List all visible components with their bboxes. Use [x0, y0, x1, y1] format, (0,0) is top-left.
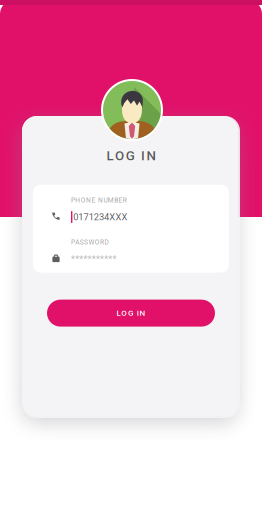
staticText: LOG IN: [116, 308, 145, 318]
staticText: PASSWORD: [71, 238, 108, 246]
staticText: LOG IN: [106, 148, 155, 164]
staticText: ***********: [71, 254, 116, 264]
button[interactable]: LOG IN: [47, 300, 215, 327]
staticText: PHONE NUMBER: [71, 196, 127, 204]
staticText: 0171234XXX: [73, 212, 128, 222]
